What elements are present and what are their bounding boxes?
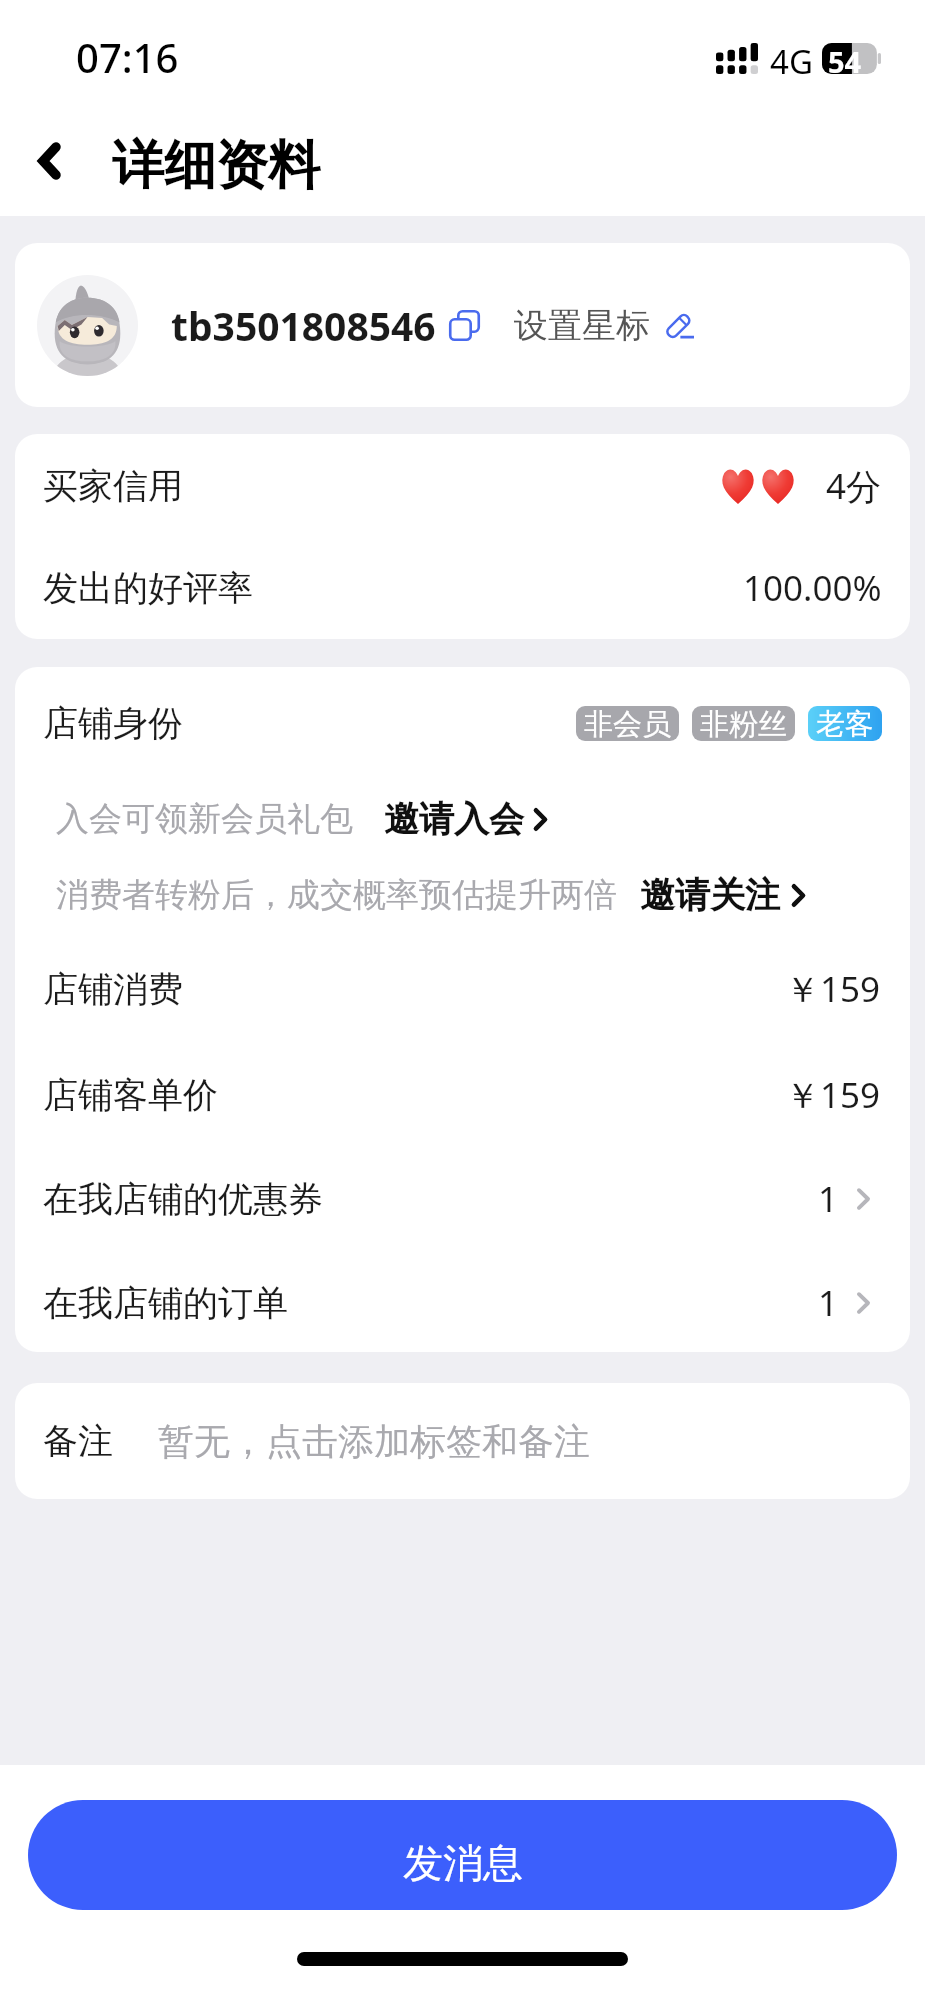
staticText: 入会可领新会员礼包 [56,798,353,840]
staticText: 1 [818,1175,839,1223]
staticText: 54 [828,42,862,73]
staticText: 100.00% [743,564,882,612]
staticText: 4分 [826,462,882,510]
button[interactable]: 设置星标 [514,304,694,347]
staticText: 备注 [43,1419,113,1463]
staticText: 在我店铺的优惠券 [43,1177,323,1221]
staticText: 非粉丝 [700,706,787,741]
button[interactable]: 备注 [15,1383,910,1499]
staticText: 消费者转粉后，成交概率预估提升两倍 [56,874,617,916]
staticText: 07:16 [76,30,179,84]
staticText: 发消息 [403,1838,523,1888]
staticText: 店铺客单价 [43,1073,218,1117]
staticText: tb3501808546 [171,299,436,352]
button[interactable]: 邀请入会 [384,797,547,841]
staticText: 老客 [816,706,874,741]
button[interactable]: 店铺客单价 [15,1042,910,1147]
button[interactable]: 在我店铺的订单 [15,1254,910,1352]
staticText: ￥159 [785,1071,881,1119]
staticText: 1 [818,1279,839,1327]
staticText: 店铺消费 [43,967,183,1011]
staticText: 详细资料 [112,133,320,199]
staticText: 邀请入会 [384,797,524,841]
button[interactable]: 店铺消费 [15,932,910,1045]
staticText: 店铺身份 [43,701,183,745]
staticText: 暂无，点击添加标签和备注 [158,1419,590,1464]
button[interactable]: Back [14,126,84,196]
staticText: 发出的好评率 [43,566,253,610]
staticText: 买家信用 [43,464,183,508]
staticText: 在我店铺的订单 [43,1281,288,1325]
button[interactable]: Avatar [37,275,138,376]
staticText: 非会员 [584,706,671,741]
staticText: 设置星标 [514,304,650,347]
staticText: 邀请关注 [640,873,780,917]
button[interactable]: 在我店铺的优惠券 [15,1147,910,1251]
button[interactable]: 发消息 [28,1800,897,1910]
button[interactable]: Copy account [449,310,480,341]
staticText: ￥159 [785,965,881,1013]
button[interactable]: 邀请关注 [640,873,805,917]
staticText: 4G [770,39,813,84]
